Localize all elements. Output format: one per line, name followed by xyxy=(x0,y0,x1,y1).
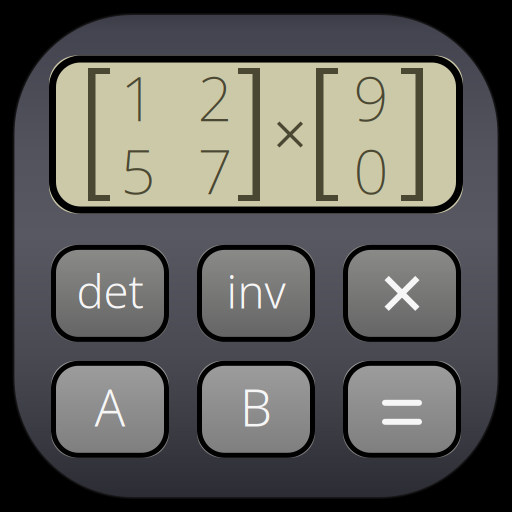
staticText: 2 xyxy=(197,57,232,138)
staticText: 0 xyxy=(353,130,388,211)
button[interactable]: Equals xyxy=(343,361,461,458)
button[interactable]: Multiply xyxy=(343,245,461,342)
button[interactable]: Determinant xyxy=(51,245,169,342)
staticText: A xyxy=(94,373,125,440)
staticText: 1 xyxy=(120,57,155,138)
staticText: B xyxy=(240,373,272,440)
staticText: 5 xyxy=(120,130,155,211)
staticText: det xyxy=(76,261,143,321)
button[interactable]: Matrix B xyxy=(197,361,315,458)
staticText: 7 xyxy=(197,130,232,211)
button[interactable]: Matrix A xyxy=(51,361,169,458)
staticText: inv xyxy=(226,261,285,321)
button[interactable]: Inverse xyxy=(197,245,315,342)
staticText: 9 xyxy=(353,57,388,138)
